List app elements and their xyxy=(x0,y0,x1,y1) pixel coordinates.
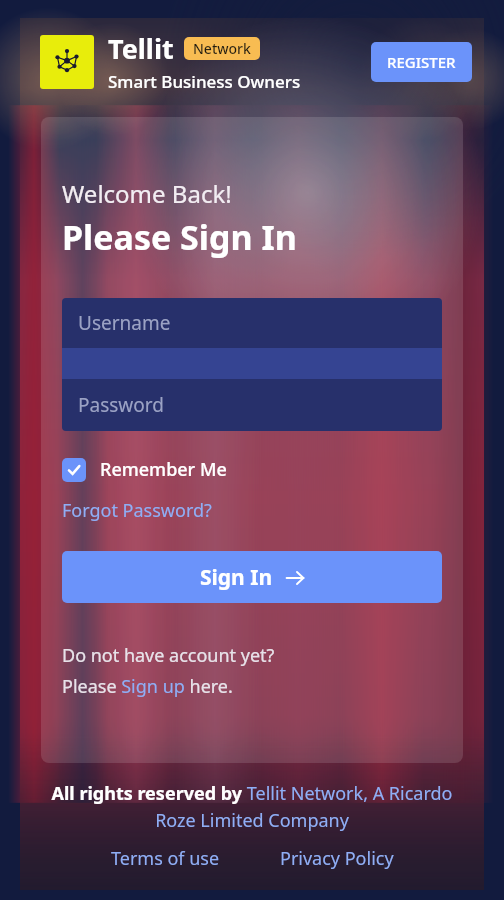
staticText: Privacy Policy xyxy=(280,846,394,871)
staticText: Tellit xyxy=(108,30,174,67)
staticText: Password xyxy=(78,392,164,418)
staticText: Forgot Password? xyxy=(62,498,212,523)
button[interactable]: Privacy Policy xyxy=(272,846,402,871)
staticText: Network xyxy=(193,39,251,58)
staticText: All rights reserved by Tellit Network, A… xyxy=(38,781,466,832)
staticText: Username xyxy=(78,310,171,336)
button[interactable]: Tellit logo xyxy=(40,35,94,89)
staticText: Please Sign In xyxy=(62,214,297,260)
staticText: Remember Me xyxy=(100,457,227,482)
button[interactable]: Password xyxy=(62,379,442,431)
button[interactable]: REGISTER xyxy=(371,42,472,82)
staticText: Sign In xyxy=(200,563,273,592)
staticText: Welcome Back! xyxy=(62,177,232,210)
staticText: REGISTER xyxy=(387,52,456,72)
button[interactable]: Terms of use xyxy=(103,846,228,871)
staticText: Do not have account yet? xyxy=(62,643,275,668)
button[interactable]: Username xyxy=(62,298,442,348)
staticText: Terms of use xyxy=(111,846,220,871)
button[interactable]: Remember Me xyxy=(62,457,227,482)
staticText: Please Sign up here. xyxy=(62,674,233,699)
button[interactable]: Please Sign up here. xyxy=(62,674,233,699)
button[interactable]: Forgot Password? xyxy=(62,498,212,523)
button[interactable]: Sign In xyxy=(62,551,442,603)
staticText: Smart Business Owners xyxy=(108,70,301,93)
